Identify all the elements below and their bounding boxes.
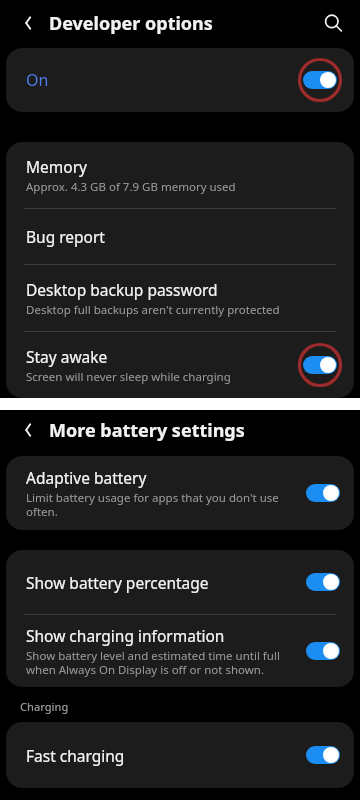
staticText: Desktop backup password xyxy=(26,279,218,300)
staticText: Limit battery usage for apps that you do… xyxy=(26,490,302,519)
button[interactable]: Stay awake xyxy=(6,332,354,398)
button[interactable]: Show battery percentage xyxy=(6,550,354,614)
button[interactable]: Show charging information xyxy=(6,615,354,687)
button[interactable]: Search xyxy=(320,10,346,36)
staticText: Desktop full backups aren't currently pr… xyxy=(26,302,280,318)
staticText: Show battery percentage xyxy=(26,572,209,593)
staticText: Approx. 4.3 GB of 7.9 GB memory used xyxy=(26,179,236,195)
staticText: Show battery level and estimated time un… xyxy=(26,648,302,677)
staticText: Adaptive battery xyxy=(26,467,147,488)
button[interactable]: Fast charging xyxy=(6,722,354,788)
staticText: Screen will never sleep while charging xyxy=(26,369,231,385)
button[interactable]: Back xyxy=(15,417,41,443)
button[interactable]: Desktop backup password xyxy=(6,265,354,331)
staticText: Bug report xyxy=(26,226,105,247)
staticText: Fast charging xyxy=(26,745,125,766)
staticText: Developer options xyxy=(49,11,213,36)
button[interactable]: Memory xyxy=(6,142,354,208)
staticText: More battery settings xyxy=(49,418,245,443)
button[interactable]: Back xyxy=(15,10,41,36)
staticText: Show charging information xyxy=(26,625,225,646)
staticText: Memory xyxy=(26,156,87,177)
button[interactable]: On xyxy=(6,48,354,112)
button[interactable]: Adaptive battery xyxy=(6,456,354,530)
button[interactable]: Bug report xyxy=(6,209,354,264)
staticText: Stay awake xyxy=(26,346,108,367)
staticText: Charging xyxy=(20,699,69,714)
staticText: On xyxy=(26,69,296,91)
